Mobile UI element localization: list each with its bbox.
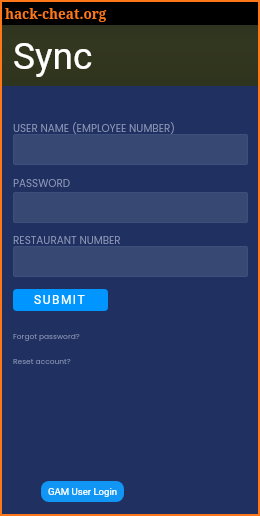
staticText: USER NAME (EMPLOYEE NUMBER) <box>13 121 176 136</box>
staticText: hack-cheat.org <box>5 5 107 23</box>
button[interactable]: Forgot password? <box>13 331 80 341</box>
staticText: PASSWORD <box>13 176 71 191</box>
staticText: Reset account? <box>13 356 71 366</box>
staticText: RESTAURANT NUMBER <box>13 233 121 248</box>
button[interactable]: Reset account? <box>13 356 71 366</box>
staticText: Sync <box>13 35 93 78</box>
button[interactable]: SUBMIT <box>13 289 108 311</box>
staticText: GAM User Login <box>48 486 118 497</box>
staticText: Forgot password? <box>13 331 80 341</box>
staticText: SUBMIT <box>34 293 87 307</box>
button[interactable]: GAM User Login <box>41 481 124 502</box>
